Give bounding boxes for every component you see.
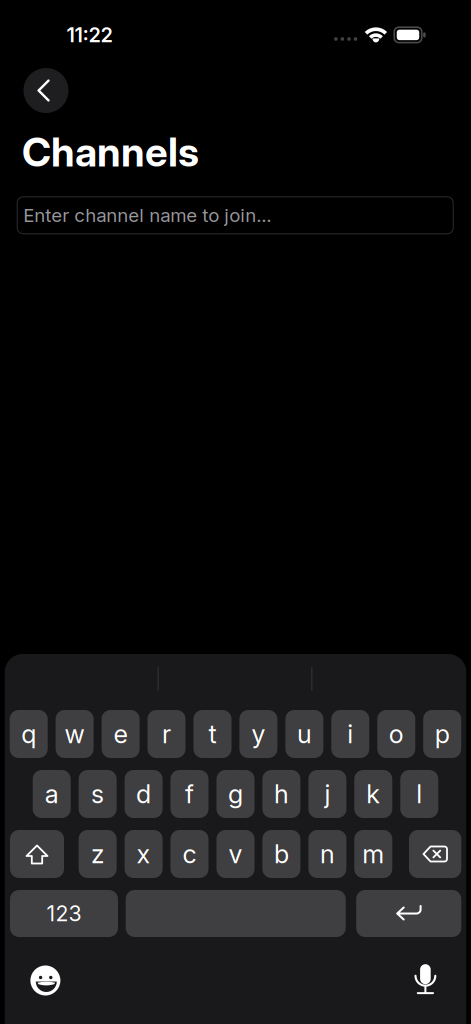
- staticText: Enter channel name to join...: [23, 204, 271, 226]
- button[interactable]: j: [308, 770, 346, 818]
- button[interactable]: Enter channel name to join...: [17, 197, 453, 234]
- staticText: w: [65, 719, 85, 749]
- button[interactable]: p: [423, 710, 461, 758]
- button[interactable]: b: [262, 830, 300, 878]
- button[interactable]: z: [79, 830, 117, 878]
- button[interactable]: Dictation: [409, 963, 441, 995]
- button[interactable]: Return: [356, 890, 461, 937]
- staticText: a: [45, 779, 59, 809]
- staticText: d: [136, 779, 151, 809]
- button[interactable]: n: [308, 830, 346, 878]
- button[interactable]: Back: [23, 68, 68, 113]
- button[interactable]: m: [354, 830, 392, 878]
- button[interactable]: t: [193, 710, 231, 758]
- button[interactable]: y: [239, 710, 277, 758]
- button[interactable]: w: [56, 710, 94, 758]
- staticText: j: [324, 779, 330, 809]
- button[interactable]: h: [262, 770, 300, 818]
- staticText: q: [21, 719, 36, 749]
- staticText: k: [366, 779, 380, 809]
- button[interactable]: f: [170, 770, 208, 818]
- button[interactable]: o: [377, 710, 415, 758]
- staticText: 123: [46, 901, 81, 926]
- button[interactable]: d: [125, 770, 163, 818]
- button[interactable]: space: [126, 890, 346, 937]
- button[interactable]: a: [33, 770, 71, 818]
- button[interactable]: g: [216, 770, 254, 818]
- button[interactable]: e: [102, 710, 140, 758]
- staticText: h: [274, 779, 289, 809]
- staticText: s: [91, 779, 104, 809]
- staticText: m: [362, 839, 384, 869]
- staticText: r: [162, 719, 171, 749]
- staticText: y: [251, 719, 265, 749]
- button[interactable]: r: [147, 710, 185, 758]
- button[interactable]: x: [125, 830, 163, 878]
- button[interactable]: k: [354, 770, 392, 818]
- button[interactable]: 123: [10, 890, 118, 937]
- staticText: c: [182, 839, 196, 869]
- staticText: p: [435, 719, 450, 749]
- button[interactable]: c: [170, 830, 208, 878]
- staticText: l: [416, 779, 422, 809]
- button[interactable]: v: [216, 830, 254, 878]
- staticText: o: [389, 719, 404, 749]
- staticText: f: [185, 779, 194, 809]
- button[interactable]: s: [79, 770, 117, 818]
- button[interactable]: q: [10, 710, 48, 758]
- button[interactable]: l: [400, 770, 438, 818]
- button[interactable]: u: [285, 710, 323, 758]
- staticText: i: [347, 719, 353, 749]
- button[interactable]: Emoji: [30, 965, 60, 995]
- staticText: e: [114, 719, 128, 749]
- button[interactable]: Delete: [409, 830, 461, 878]
- button[interactable]: Shift: [10, 830, 64, 878]
- staticText: Channels: [22, 128, 199, 176]
- staticText: t: [208, 719, 216, 749]
- staticText: z: [91, 839, 104, 869]
- staticText: n: [320, 839, 335, 869]
- staticText: u: [297, 719, 312, 749]
- button[interactable]: i: [331, 710, 369, 758]
- staticText: b: [274, 839, 289, 869]
- staticText: 11:22: [66, 23, 112, 47]
- staticText: v: [228, 839, 242, 869]
- staticText: g: [228, 779, 243, 809]
- staticText: x: [137, 839, 151, 869]
